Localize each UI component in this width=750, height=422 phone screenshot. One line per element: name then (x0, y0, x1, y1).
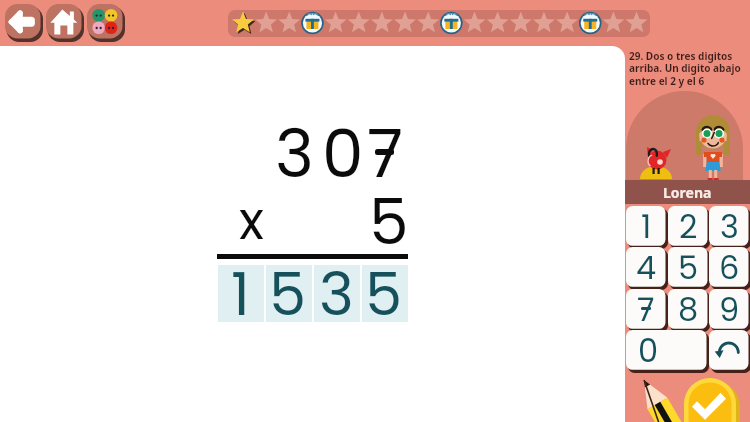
button[interactable] (362, 265, 408, 322)
button[interactable]: 1 (626, 206, 668, 249)
button[interactable]: 4 (626, 247, 668, 290)
staticText: 5 (365, 253, 403, 333)
staticText: 7 (637, 287, 655, 330)
staticText: 5 (369, 178, 409, 266)
staticText: Lorena (663, 183, 712, 202)
staticText: 2 (679, 204, 698, 247)
button[interactable]: Home (46, 4, 84, 42)
button[interactable] (228, 10, 650, 37)
button[interactable]: 8 (668, 289, 710, 332)
staticText: 6 (719, 245, 740, 288)
staticText: 1 (641, 204, 652, 247)
button[interactable]: 5 (668, 247, 710, 290)
staticText: 8 (678, 287, 699, 330)
staticText: 3 (720, 204, 739, 247)
staticText: 29. Dos o tres digitos arriba. Un digito… (629, 49, 747, 88)
button[interactable]: 7 (626, 289, 668, 332)
staticText: 9 (719, 287, 740, 330)
button[interactable]: Players (87, 4, 125, 42)
staticText: 7 (367, 108, 404, 200)
button[interactable]: 2 (668, 206, 710, 249)
button[interactable]: 6 (709, 247, 750, 290)
staticText: x (239, 184, 264, 257)
staticText: 1 (231, 253, 250, 333)
staticText: 5 (269, 253, 307, 333)
button[interactable] (314, 265, 360, 322)
button[interactable]: Back (5, 4, 43, 42)
staticText: 3 (319, 253, 354, 333)
staticText: 5 (678, 245, 699, 288)
staticText: 0 (638, 328, 659, 371)
staticText: 0 (322, 108, 364, 200)
button[interactable]: 3 (709, 206, 750, 249)
button[interactable]: 0 (626, 330, 709, 373)
button[interactable]: Undo (709, 330, 750, 373)
button[interactable] (218, 265, 264, 322)
button[interactable] (266, 265, 312, 322)
staticText: 4 (636, 245, 657, 288)
button[interactable]: Confirm (684, 378, 740, 422)
button[interactable]: 9 (709, 289, 750, 332)
staticText: 3 (275, 108, 314, 200)
